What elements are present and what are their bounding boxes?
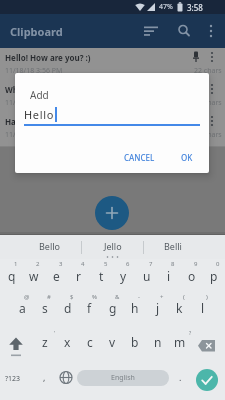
button[interactable] [0,48,225,80]
staticText: 21 chars [194,130,222,140]
button[interactable]: p [202,266,225,286]
button[interactable]: b [123,332,146,352]
button[interactable]: a [11,298,34,318]
button[interactable]: w [22,266,45,286]
staticText: 11/18/18 3:56 PM [5,66,63,76]
staticText: 2 [36,260,40,268]
staticText: What are you doing? [5,84,87,95]
staticText: i [167,268,171,284]
staticText: 11/18/18 3:56 PM [5,130,63,140]
button[interactable]: g [101,298,124,318]
staticText: h [131,300,139,316]
staticText: . [179,371,182,383]
staticText: Jello [104,240,122,252]
button[interactable] [2,334,30,358]
button[interactable]: n [146,332,169,352]
staticText: k [176,300,183,316]
button[interactable] [140,22,160,40]
button[interactable]: ?123 [0,368,26,390]
staticText: e [53,268,60,284]
button[interactable]: Bello [20,237,80,255]
staticText: g [109,300,117,316]
staticText: s [42,300,48,316]
staticText: 0 [216,260,220,268]
button[interactable]: . [172,366,188,388]
button[interactable]: k [168,298,191,318]
staticText: # [47,293,51,301]
button[interactable]: c [78,332,101,352]
staticText: a [19,300,26,316]
staticText: + [160,293,164,301]
staticText: 11/18/18 3:56 PM [5,98,63,108]
button[interactable]: u [135,266,158,286]
staticText: d [64,300,72,316]
button[interactable]: English [77,370,169,386]
button[interactable]: OK [170,149,204,165]
button[interactable] [196,369,218,391]
button[interactable] [196,336,223,356]
button[interactable]: t [90,266,113,286]
staticText: t [99,268,104,284]
staticText: 6 [126,260,130,268]
staticText: q [8,268,16,284]
staticText: b [131,334,139,350]
button[interactable]: l [191,298,214,318]
staticText: p [210,268,218,284]
staticText: Belli [164,240,182,252]
staticText: $ [70,293,74,301]
button[interactable] [175,22,193,40]
button[interactable] [95,196,129,230]
staticText: 5 [104,260,108,268]
button[interactable]: r [67,266,90,286]
staticText: 1 [14,260,18,268]
button[interactable]: Jello [83,237,142,255]
staticText: & [115,293,120,301]
staticText: 8 [171,260,175,268]
staticText: CANCEL [124,152,155,163]
staticText: m [174,334,186,350]
button[interactable]: e [45,266,68,286]
staticText: y [120,268,127,284]
staticText: English [111,373,135,383]
button[interactable]: s [33,298,56,318]
staticText: x [64,334,71,350]
button[interactable]: m [168,332,191,352]
staticText: ? [189,330,192,337]
staticText: 47% [159,2,173,12]
button[interactable] [56,368,76,388]
button[interactable]: q [0,266,23,286]
staticText: Hahaha! That's funny! [5,116,92,127]
button[interactable]: CANCEL [113,149,165,165]
staticText: - [138,293,140,301]
button[interactable]: z [33,332,56,352]
button[interactable]: y [112,266,135,286]
staticText: 9 [194,260,198,268]
staticText: c [87,334,93,350]
staticText: @ [24,293,30,301]
button[interactable]: j [146,298,169,318]
button[interactable] [0,112,225,146]
staticText: Hello [24,107,55,122]
button[interactable]: f [78,298,101,318]
staticText: 4 [81,260,85,268]
staticText: ) [206,293,208,301]
staticText: 22 chars [194,66,222,76]
staticText: Add [30,88,49,102]
staticText: Bello [39,240,61,252]
staticText: w [29,268,39,284]
button[interactable]: , [36,366,52,388]
button[interactable]: h [123,298,146,318]
button[interactable] [203,22,219,40]
button[interactable]: Belli [144,237,202,255]
button[interactable]: d [56,298,79,318]
button[interactable]: o [180,266,203,286]
button[interactable]: x [56,332,79,352]
button[interactable]: v [101,332,124,352]
staticText: 7 [149,260,153,268]
staticText: 3:58 [187,2,203,13]
staticText: ?123 [5,374,21,384]
button[interactable] [0,80,225,112]
button[interactable]: i [157,266,180,286]
staticText: f [87,300,92,316]
staticText: 3 [59,260,63,268]
